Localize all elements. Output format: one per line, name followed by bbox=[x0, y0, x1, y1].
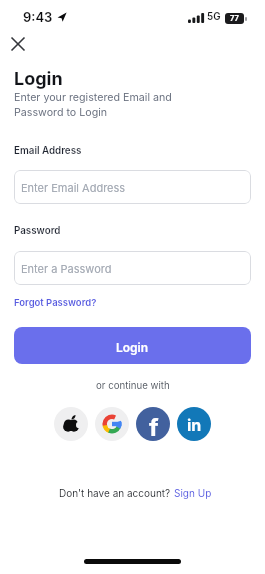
staticText: Enter a Password bbox=[21, 262, 112, 275]
staticText: 5G bbox=[207, 11, 221, 23]
staticText: Don't have an account? bbox=[59, 487, 174, 499]
staticText: Password bbox=[14, 225, 61, 237]
staticText: Login bbox=[116, 340, 149, 355]
button[interactable]: f bbox=[136, 407, 170, 441]
button[interactable]: Forgot Password? bbox=[14, 297, 97, 308]
staticText: 77 bbox=[230, 14, 239, 23]
staticText: Login bbox=[14, 68, 63, 90]
staticText: or continue with bbox=[96, 380, 170, 392]
button[interactable] bbox=[95, 407, 129, 441]
staticText: in bbox=[187, 415, 202, 434]
button[interactable]: in bbox=[177, 407, 211, 441]
staticText: f bbox=[149, 413, 159, 441]
staticText: Email Address bbox=[14, 145, 82, 157]
staticText: Enter your registered Email and Password… bbox=[14, 91, 172, 119]
staticText: Enter Email Address bbox=[21, 181, 126, 194]
button[interactable]: Login bbox=[14, 327, 251, 364]
button[interactable]: Enter Email Address bbox=[14, 170, 251, 204]
staticText: 9:43 bbox=[23, 9, 53, 25]
button[interactable] bbox=[4, 30, 32, 58]
button[interactable] bbox=[54, 407, 88, 441]
button[interactable]: Sign Up bbox=[174, 487, 212, 499]
button[interactable]: Enter a Password bbox=[14, 251, 251, 285]
